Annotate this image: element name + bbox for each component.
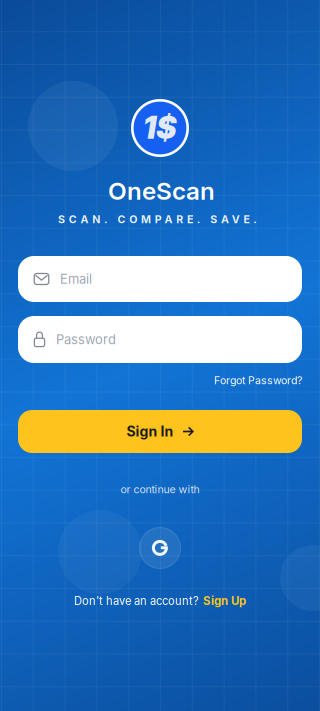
staticText: Password xyxy=(56,332,116,347)
staticText: 1$ xyxy=(143,109,177,146)
button[interactable]: Password xyxy=(18,316,302,363)
staticText: Sign Up xyxy=(203,594,246,608)
button[interactable]: Forgot Password? xyxy=(214,374,302,387)
staticText: SCAN. COMPARE. SAVE. xyxy=(58,213,257,226)
staticText: Forgot Password? xyxy=(214,374,302,387)
staticText: Email xyxy=(60,271,92,287)
staticText: OneScan xyxy=(108,176,215,205)
staticText: Don't have an account? xyxy=(74,594,199,608)
staticText: or continue with xyxy=(120,483,199,496)
staticText: Sign In xyxy=(126,423,173,440)
button[interactable]: Continue with Google xyxy=(139,527,181,569)
button[interactable]: Email xyxy=(18,256,302,302)
button[interactable]: Sign Up xyxy=(203,594,246,608)
button[interactable]: Sign In xyxy=(18,410,302,453)
